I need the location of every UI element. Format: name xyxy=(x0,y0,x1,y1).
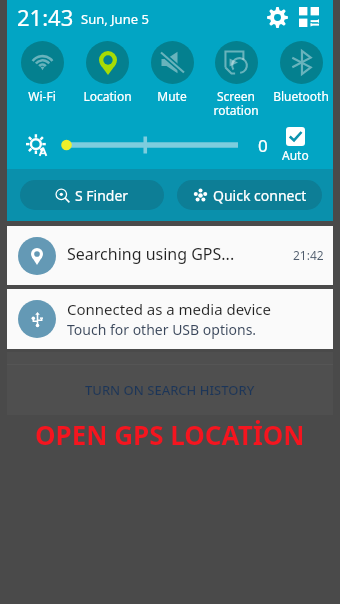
button[interactable]: Wi-Fi xyxy=(11,41,73,104)
staticText: 21:43 xyxy=(17,2,74,32)
staticText: OPEN GPS LOCATİON xyxy=(35,417,305,452)
staticText: TURN ON SEARCH HISTORY xyxy=(85,381,255,399)
button[interactable]: Quick connect xyxy=(177,180,322,210)
button[interactable]: S Finder xyxy=(20,180,164,210)
staticText: S Finder xyxy=(75,186,129,205)
button[interactable]: Searching using GPS... xyxy=(7,226,333,285)
button[interactable]: Settings xyxy=(264,4,290,30)
staticText: Wi-Fi xyxy=(28,88,56,104)
button[interactable]: Mute xyxy=(141,41,203,104)
staticText: Connected as a media device xyxy=(67,299,272,319)
staticText: Touch for other USB options. xyxy=(67,320,257,339)
staticText: 0 xyxy=(258,134,268,157)
button[interactable]: Bluetooth xyxy=(270,41,332,104)
staticText: Searching using GPS... xyxy=(67,243,235,265)
staticText: Location xyxy=(83,88,132,104)
button[interactable]: TURN ON SEARCH HISTORY xyxy=(7,365,333,415)
staticText: Mute xyxy=(157,88,187,104)
staticText: Screen rotation xyxy=(213,88,259,119)
staticText: Bluetooth xyxy=(273,88,329,104)
staticText: Quick connect xyxy=(213,186,307,205)
staticText: Sun, June 5 xyxy=(81,10,149,28)
button[interactable]: Location xyxy=(76,41,138,104)
button[interactable]: Edit quick settings xyxy=(296,4,322,30)
staticText: Auto xyxy=(282,147,309,163)
staticText: 21:42 xyxy=(293,247,324,263)
button[interactable]: Auto xyxy=(276,127,314,163)
button[interactable]: Screen rotation xyxy=(205,41,267,119)
button[interactable]: Connected as a media device xyxy=(7,289,333,349)
